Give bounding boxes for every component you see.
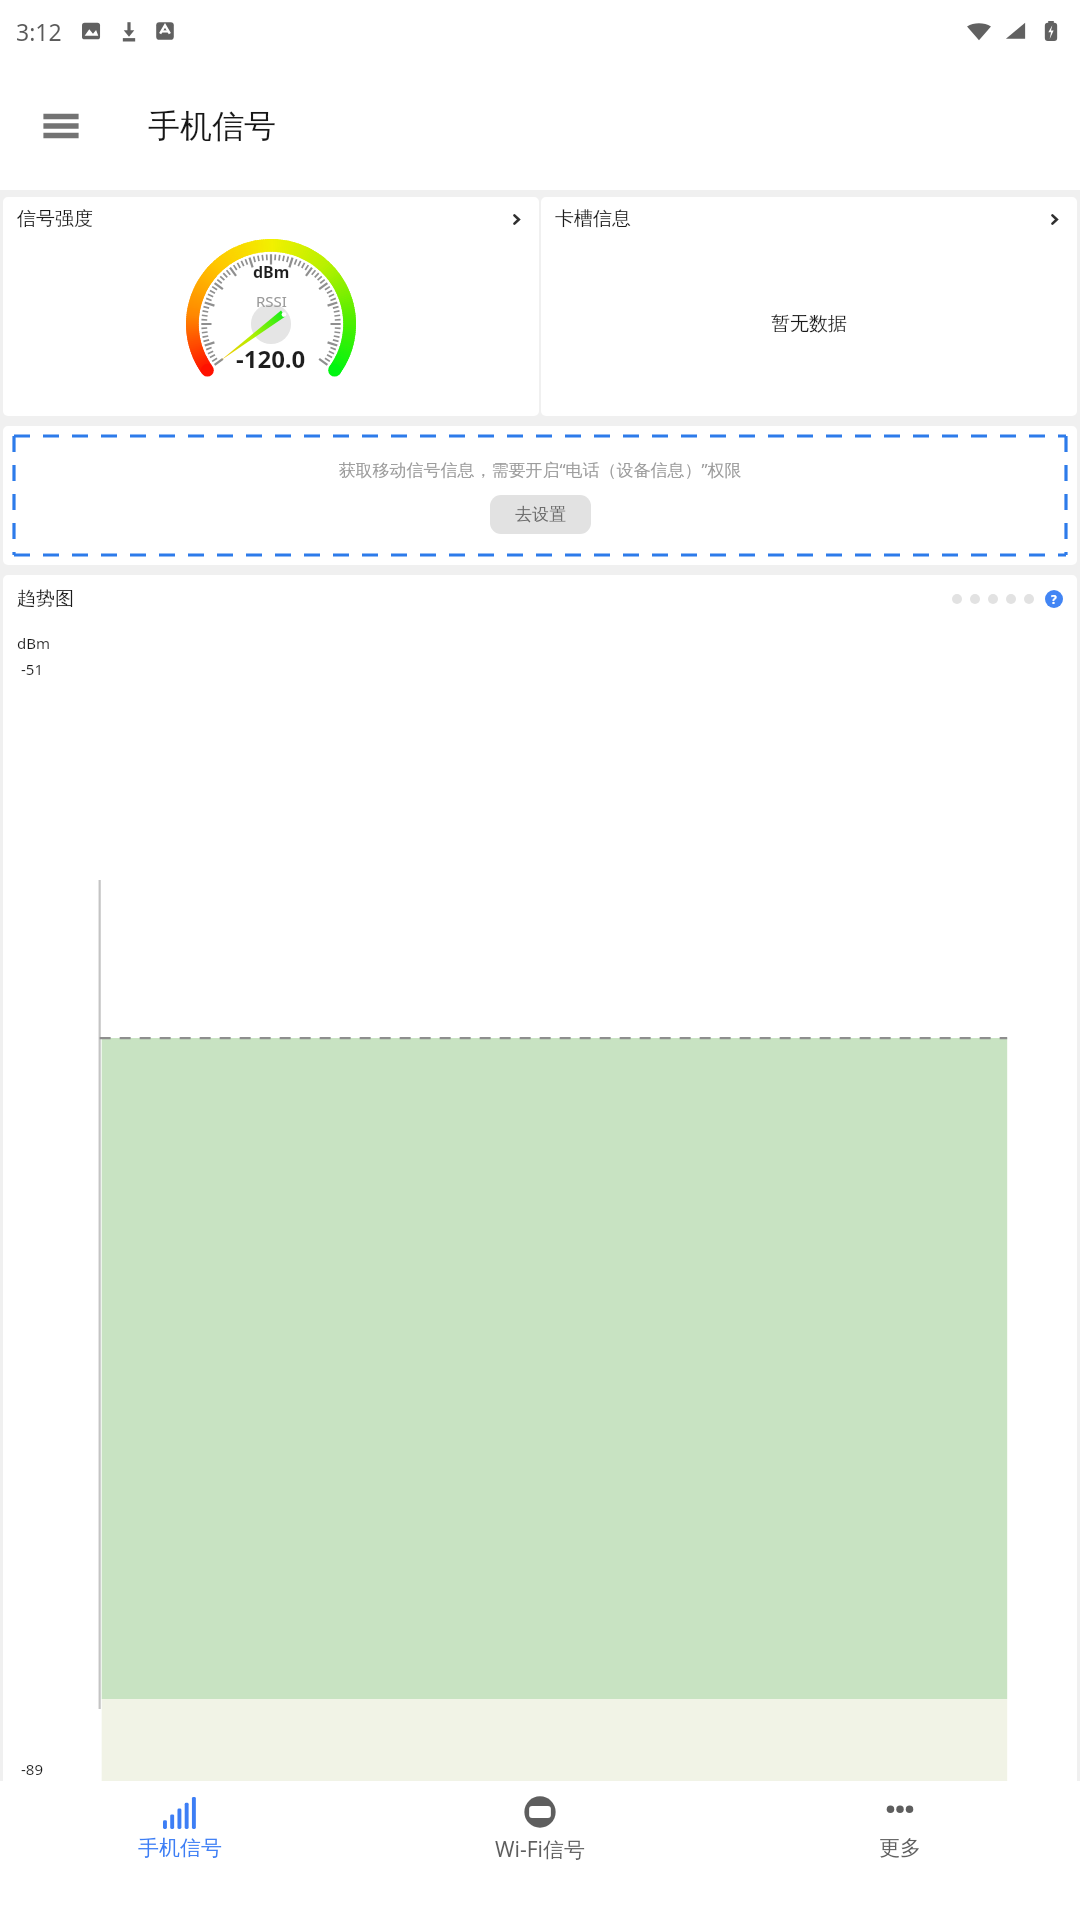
staticText: 手机信号 — [138, 1835, 222, 1861]
staticText: -51 — [21, 659, 43, 679]
staticText: Wi-Fi信号 — [495, 1835, 586, 1864]
button[interactable]: 更多 — [720, 1781, 1080, 1920]
staticText: 3:12 — [16, 16, 62, 47]
staticText: dBm — [17, 633, 51, 653]
staticText: ? — [1051, 591, 1057, 607]
staticText: 获取移动信号信息，需要开启“电话（设备信息）”权限 — [338, 458, 742, 481]
staticText: 趋势图 — [17, 587, 74, 611]
button[interactable]: Page dot — [952, 594, 962, 604]
staticText: 去设置 — [515, 504, 566, 525]
staticText: -120.0 — [236, 342, 306, 375]
button[interactable]: Page dot — [1006, 594, 1016, 604]
staticText: 卡槽信息 — [555, 207, 631, 231]
staticText: dBm — [253, 261, 290, 283]
button[interactable]: Page dot — [970, 594, 980, 604]
button[interactable]: Help — [1045, 590, 1063, 608]
button[interactable]: Menu — [38, 103, 84, 149]
button[interactable]: Wi-Fi信号 — [360, 1781, 720, 1920]
staticText: -89 — [21, 1759, 43, 1779]
button[interactable]: 去设置 — [490, 495, 591, 534]
staticText: 信号强度 — [17, 207, 93, 231]
button[interactable]: 卡槽信息 — [541, 197, 1077, 416]
button[interactable]: 信号强度 — [3, 197, 539, 416]
button[interactable]: 手机信号 — [0, 1781, 360, 1920]
staticText: 暂无数据 — [771, 312, 847, 336]
button[interactable]: Page dot — [1024, 594, 1034, 604]
staticText: RSSI — [256, 291, 287, 311]
staticText: 更多 — [879, 1835, 921, 1861]
staticText: 手机信号 — [148, 106, 276, 146]
button[interactable]: Page dot — [988, 594, 998, 604]
